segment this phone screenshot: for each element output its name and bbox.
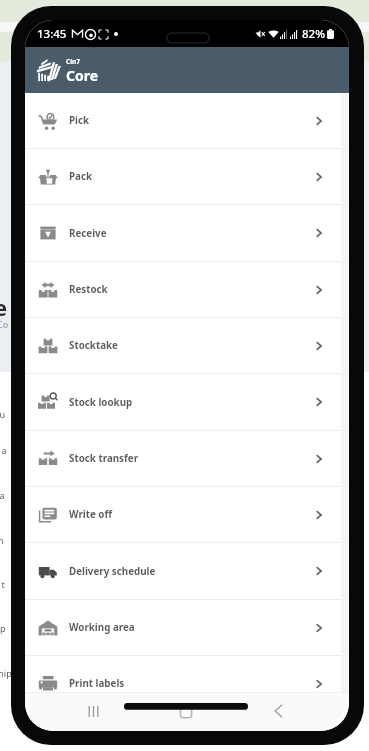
button[interactable]: Stocktake	[25, 318, 349, 374]
button[interactable]: Stock lookup	[25, 374, 349, 431]
staticText: e a	[0, 444, 7, 456]
staticText: Pick	[69, 114, 90, 127]
button[interactable]: Restock	[25, 262, 349, 318]
button[interactable]: Receive	[25, 205, 349, 262]
button[interactable]: Home	[124, 699, 248, 723]
staticText: ship	[0, 667, 12, 679]
button[interactable]: Write off	[25, 487, 349, 543]
staticText: 82%	[302, 26, 325, 42]
staticText: Delivery schedule	[69, 565, 156, 578]
staticText: Co	[0, 318, 9, 330]
button[interactable]: Pack	[25, 149, 349, 205]
staticText: Receive	[69, 227, 107, 240]
button[interactable]: Delivery schedule	[25, 543, 349, 600]
staticText: Core	[66, 66, 99, 85]
staticText: Pack	[69, 170, 93, 183]
button[interactable]: Recent apps	[76, 694, 110, 728]
staticText: r p	[0, 622, 6, 634]
button[interactable]: Pick	[25, 93, 349, 149]
staticText: Write off	[69, 508, 113, 521]
staticText: e	[0, 292, 8, 322]
staticText: t a	[0, 489, 5, 501]
button[interactable]: Back	[261, 694, 295, 728]
staticText: Working area	[69, 621, 135, 634]
button[interactable]: Stock transfer	[25, 431, 349, 487]
staticText: Stocktake	[69, 339, 118, 352]
staticText: Print labels	[69, 677, 125, 690]
button[interactable]: Print labels	[25, 656, 349, 712]
staticText: Cin7	[66, 57, 81, 66]
staticText: Restock	[69, 283, 108, 296]
staticText: e t	[0, 578, 5, 590]
staticText: Stock lookup	[69, 396, 133, 409]
staticText: ch	[0, 534, 4, 546]
staticText: 13:45	[37, 26, 67, 42]
button[interactable]: Working area	[25, 600, 349, 656]
staticText: nu	[0, 408, 6, 420]
staticText: Stock transfer	[69, 452, 139, 465]
